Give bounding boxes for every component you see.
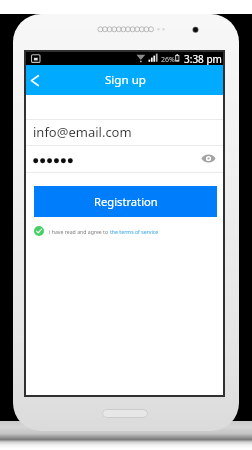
button[interactable]: i have read and agree to	[34, 225, 159, 237]
staticText: Registration	[94, 194, 158, 209]
staticText: info@email.com	[33, 123, 132, 141]
button[interactable]: Registration	[34, 186, 217, 217]
staticText: 3:38 pm	[184, 52, 222, 65]
staticText: i have read and agree to	[49, 228, 110, 235]
staticText: Sign up	[105, 72, 146, 88]
staticText: 26%	[161, 55, 175, 65]
button[interactable]: Show password	[198, 148, 219, 169]
staticText: the terms of service	[110, 228, 159, 235]
button[interactable]: Back	[28, 65, 44, 95]
